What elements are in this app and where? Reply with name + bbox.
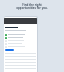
button[interactable] xyxy=(5,36,36,39)
button[interactable] xyxy=(5,39,36,42)
staticText: Find the right opportunities for you. xyxy=(16,3,48,10)
button[interactable] xyxy=(5,33,36,36)
button[interactable] xyxy=(5,42,36,45)
button[interactable] xyxy=(5,49,14,51)
button[interactable] xyxy=(5,45,36,48)
